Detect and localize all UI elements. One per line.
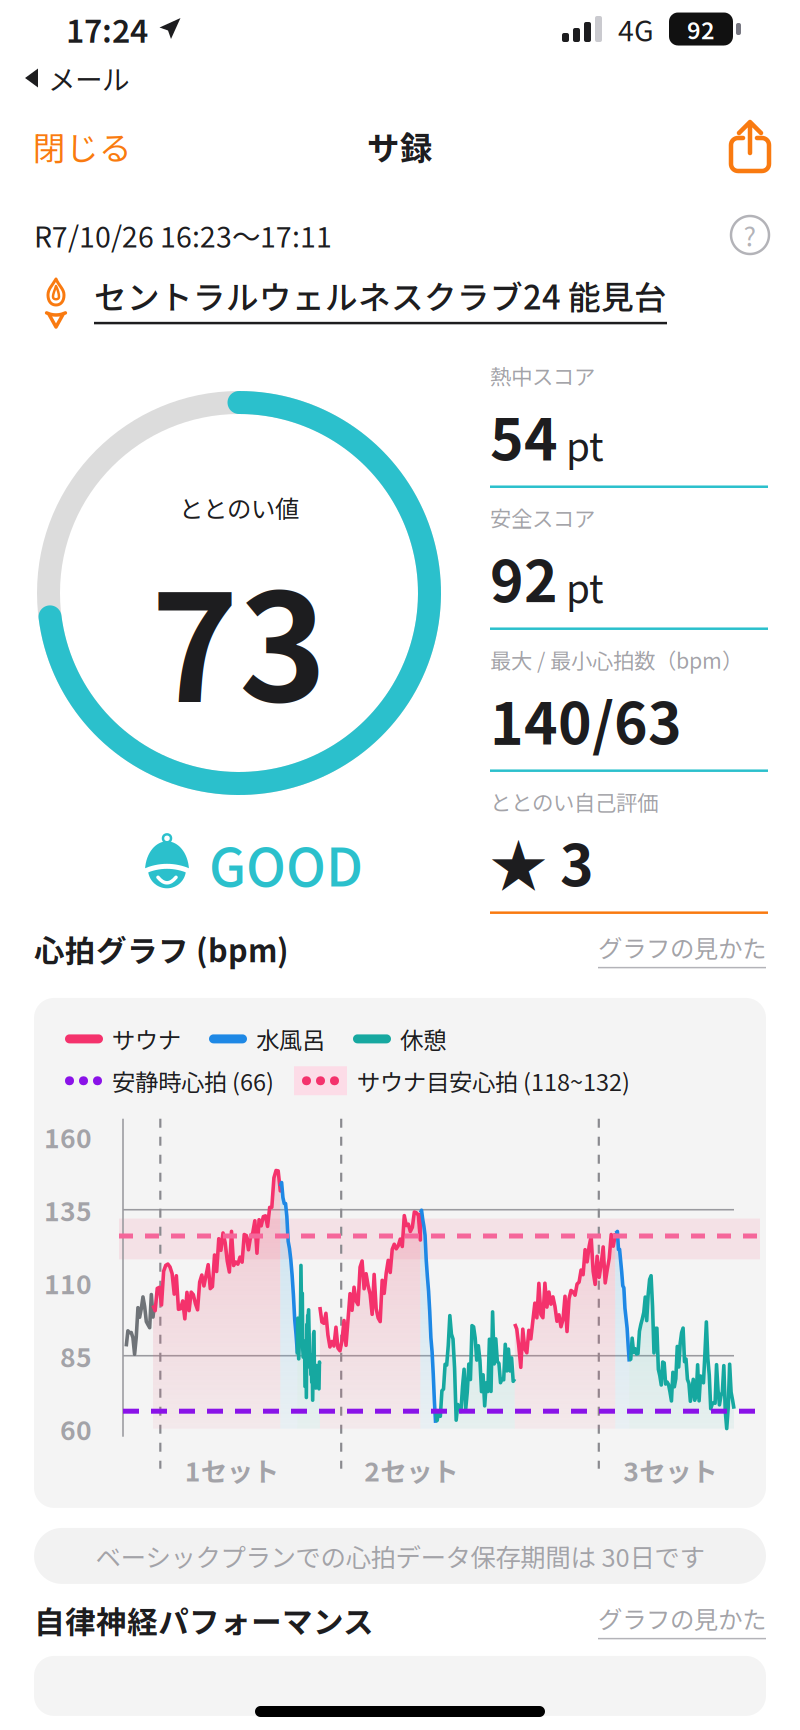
staticText: サ録 xyxy=(367,122,433,170)
staticText: 水風呂 xyxy=(256,1022,325,1056)
staticText: 160 xyxy=(44,1118,92,1156)
staticText: 安静時心拍 (66) xyxy=(112,1064,274,1098)
staticText: 安全スコア xyxy=(490,502,595,533)
button[interactable]: セントラルウェルネスクラブ24 能見台 xyxy=(0,265,800,331)
staticText: 92 xyxy=(490,537,558,619)
staticText: 3セット xyxy=(623,1451,717,1489)
staticText: ベーシックプランでの心拍データ保存期間は 30日です xyxy=(95,1537,704,1574)
staticText: 1セット xyxy=(185,1451,279,1489)
staticText: ★ 3 xyxy=(490,821,594,903)
staticText: 休憩 xyxy=(400,1022,446,1056)
button[interactable]: グラフの見かた xyxy=(598,929,766,968)
staticText: 心拍グラフ (bpm) xyxy=(34,927,289,971)
staticText: セントラルウェルネスクラブ24 能見台 xyxy=(94,272,667,319)
staticText: 54 xyxy=(490,395,558,477)
button[interactable]: メール xyxy=(0,58,800,98)
staticText: pt xyxy=(566,558,604,614)
staticText: ととのい自己評価 xyxy=(490,786,658,817)
staticText: 最大 / 最小心拍数（bpm） xyxy=(490,644,743,675)
staticText: 110 xyxy=(44,1264,92,1302)
staticText: 自律神経パフォーマンス xyxy=(34,1598,374,1642)
button[interactable]: Share xyxy=(700,107,800,185)
staticText: サウナ目安心拍 (118~132) xyxy=(357,1064,630,1098)
button[interactable]: 閉じる xyxy=(0,108,165,184)
staticText: 73 xyxy=(151,529,327,744)
staticText: 閉じる xyxy=(33,122,132,170)
staticText: 2セット xyxy=(364,1451,458,1489)
button[interactable]: グラフの見かた xyxy=(598,1600,766,1639)
button[interactable]: Help xyxy=(726,211,774,259)
staticText: GOOD xyxy=(209,825,363,902)
staticText: 135 xyxy=(44,1191,92,1229)
staticText: 140/63 xyxy=(490,679,682,761)
staticText: グラフの見かた xyxy=(598,929,766,965)
staticText: pt xyxy=(566,416,604,472)
staticText: 熱中スコア xyxy=(490,360,595,391)
staticText: 17:24 xyxy=(66,6,148,52)
staticText: R7/10/26 16:23〜17:11 xyxy=(34,214,332,256)
staticText: 4G xyxy=(618,8,654,50)
staticText: サウナ xyxy=(112,1022,181,1056)
staticText: 85 xyxy=(60,1337,92,1375)
staticText: メール xyxy=(48,58,129,98)
staticText: ? xyxy=(743,216,756,254)
staticText: 92 xyxy=(687,12,715,46)
staticText: グラフの見かた xyxy=(598,1600,766,1636)
staticText: ととのい値 xyxy=(179,490,299,525)
staticText: 60 xyxy=(60,1410,92,1448)
